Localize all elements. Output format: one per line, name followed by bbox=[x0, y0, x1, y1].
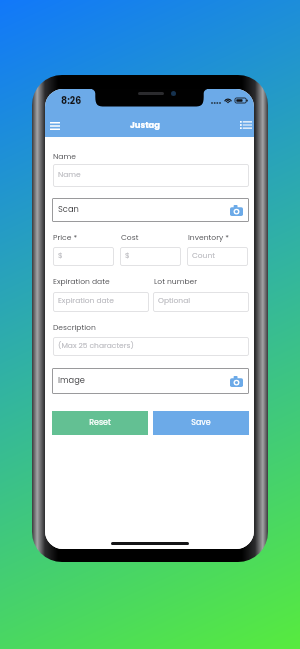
button[interactable]: $ bbox=[120, 247, 181, 266]
other: Take photo bbox=[230, 376, 243, 387]
staticText: Scan bbox=[58, 203, 79, 215]
staticText: Expiration date bbox=[53, 276, 110, 287]
other: Take photo bbox=[230, 205, 243, 216]
staticText: Count bbox=[192, 250, 215, 260]
staticText: Optional bbox=[158, 295, 191, 305]
staticText: Description bbox=[53, 322, 96, 333]
button[interactable]: Optional bbox=[153, 292, 249, 312]
staticText: Name bbox=[53, 151, 77, 162]
staticText: Price * bbox=[53, 232, 78, 243]
staticText: Lot number bbox=[154, 276, 198, 287]
staticText: Expiration date bbox=[58, 295, 114, 305]
staticText: $ bbox=[58, 250, 63, 260]
button[interactable]: Expiration date bbox=[53, 292, 149, 312]
staticText: Name bbox=[58, 169, 81, 179]
staticText: Inventory * bbox=[188, 232, 230, 243]
staticText: Save bbox=[191, 417, 211, 428]
staticText: (Max 25 characters) bbox=[58, 340, 134, 350]
button[interactable]: Reset bbox=[52, 411, 148, 435]
button[interactable]: Show item list bbox=[233, 112, 254, 137]
staticText: Cost bbox=[121, 232, 139, 243]
staticText: 8:26 bbox=[61, 94, 82, 107]
staticText: Image bbox=[58, 374, 85, 386]
button[interactable]: Count bbox=[187, 247, 248, 266]
staticText: Justag bbox=[130, 119, 160, 131]
staticText: $ bbox=[125, 250, 130, 260]
button[interactable]: (Max 25 characters) bbox=[53, 337, 249, 356]
button[interactable]: Image bbox=[52, 368, 249, 394]
button[interactable]: $ bbox=[53, 247, 114, 266]
button[interactable]: Open navigation menu bbox=[45, 113, 68, 138]
button[interactable]: Save bbox=[153, 411, 249, 435]
button[interactable]: Name bbox=[53, 164, 249, 187]
staticText: Reset bbox=[89, 417, 111, 428]
button[interactable]: Scan bbox=[52, 198, 249, 222]
